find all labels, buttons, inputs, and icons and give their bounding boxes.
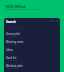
staticText: Book list [6, 56, 17, 60]
staticText: RECENT NOTES [6, 26, 22, 29]
staticText: Last week [6, 67, 17, 70]
staticText: Grocery list [6, 32, 20, 36]
button[interactable]: Book list [6, 56, 58, 64]
staticText: 2 min ago [6, 35, 17, 38]
button[interactable]: Ideas [6, 48, 58, 56]
staticText: 1 hour ago [6, 43, 18, 46]
staticText: Search [6, 20, 17, 24]
staticText: Everything stays on your phone [5, 8, 40, 11]
staticText: Workout plan [6, 64, 23, 68]
staticText: 2 days ago [6, 59, 18, 62]
button[interactable]: Workout plan [6, 64, 58, 72]
staticText: Yesterday [6, 51, 16, 54]
staticText: 100% Offline [5, 4, 26, 8]
staticText: Meeting notes [6, 40, 24, 44]
button[interactable]: Grocery list [6, 32, 58, 40]
staticText: Ideas [6, 48, 13, 52]
button[interactable]: Meeting notes [6, 40, 58, 48]
